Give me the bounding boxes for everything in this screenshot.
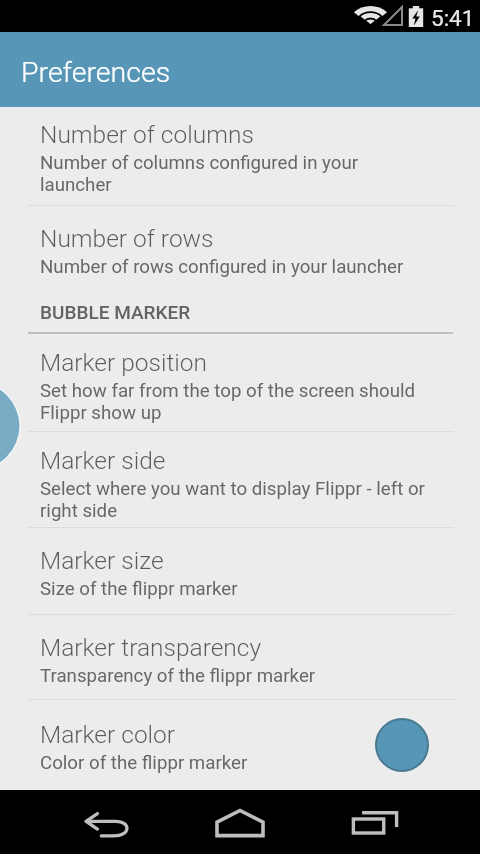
button[interactable]: Number of rows [0,206,480,290]
button[interactable]: Back [68,790,148,854]
staticText: Marker color [40,720,176,749]
button[interactable]: Marker position [0,334,480,431]
staticText: Number of rows configured in your launch… [40,256,432,278]
button[interactable]: Marker transparency [0,615,480,699]
staticText: Number of columns configured in your lau… [40,152,432,196]
button[interactable]: Marker side [0,432,480,527]
staticText: BUBBLE MARKER [40,301,191,323]
button[interactable]: Recent apps [335,790,415,854]
staticText: Number of rows [40,224,214,253]
staticText: Marker position [40,348,208,377]
staticText: Select where you want to display Flippr … [40,478,432,522]
staticText: Number of columns [40,120,254,149]
staticText: Size of the flippr marker [40,578,432,600]
button[interactable]: Marker size [0,528,480,614]
button[interactable]: Flippr bubble marker [0,381,21,471]
staticText: Transparency of the flippr marker [40,665,432,687]
staticText: Marker transparency [40,633,262,662]
button[interactable]: Number of columns [0,107,480,205]
button[interactable]: Home [200,790,280,854]
staticText: Set how far from the top of the screen s… [40,380,432,424]
staticText: 5:41 [431,5,475,31]
staticText: Color of the flippr marker [40,752,432,774]
staticText: Preferences [21,56,171,89]
staticText: Marker side [40,446,166,475]
button[interactable]: Marker color [0,700,480,790]
staticText: Marker size [40,546,164,575]
